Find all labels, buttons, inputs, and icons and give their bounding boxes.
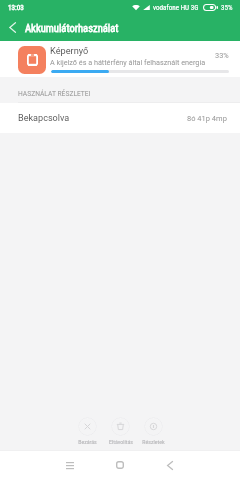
- staticText: Eltávolítás: [109, 439, 133, 445]
- button[interactable]: Recent apps: [58, 453, 82, 477]
- staticText: Bezárás: [78, 439, 97, 445]
- staticText: 33%: [215, 51, 229, 60]
- button[interactable]: Bekapcsolva: [0, 103, 240, 133]
- button[interactable]: Back: [158, 453, 182, 477]
- staticText: HASZNÁLAT RÉSZLETEI: [18, 90, 91, 98]
- button[interactable]: Bezárás: [71, 417, 104, 445]
- staticText: 35%: [221, 3, 233, 11]
- staticText: Képernyő: [50, 45, 89, 56]
- button[interactable]: Képernyő: [0, 41, 240, 77]
- staticText: Akkumulátorhasználat: [25, 22, 119, 34]
- button[interactable]: Back: [0, 14, 25, 41]
- staticText: vodafone HU 3G: [153, 3, 199, 11]
- staticText: 13:03: [8, 3, 24, 11]
- staticText: Részletek: [142, 439, 165, 445]
- button[interactable]: Részletek: [137, 417, 170, 445]
- staticText: A kijelző és a háttérfény által felhaszn…: [50, 58, 206, 66]
- staticText: 8ó 41p 4mp: [187, 114, 227, 123]
- button[interactable]: Eltávolítás: [104, 417, 137, 445]
- button[interactable]: Home: [108, 453, 132, 477]
- staticText: Bekapcsolva: [18, 113, 70, 124]
